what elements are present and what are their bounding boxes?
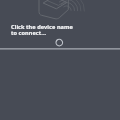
button[interactable]: Searching for devices [51, 34, 68, 51]
button[interactable]: Click the device name to connect... [11, 23, 73, 37]
staticText: Click the device name to connect... [11, 23, 73, 37]
